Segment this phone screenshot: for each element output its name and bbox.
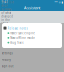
staticText: Release notes: [7, 27, 27, 30]
staticText: Settings: [1, 51, 12, 55]
staticText: Sign out: [1, 64, 13, 68]
staticText: 9:41: [1, 0, 8, 4]
staticText: ••• ᯤ ▮: [54, 0, 62, 4]
staticText: History: [1, 58, 10, 61]
staticText: Bug fixes: [10, 41, 23, 44]
staticText: Here is a short summary of what changed …: [1, 0, 13, 29]
staticText: Faster sync engine: [10, 31, 35, 35]
staticText: Assistant: [24, 5, 40, 10]
staticText: New offline mode: [10, 36, 35, 40]
